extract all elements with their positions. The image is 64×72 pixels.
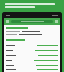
button[interactable] xyxy=(6,68,58,70)
button[interactable] xyxy=(6,43,58,48)
button[interactable] xyxy=(11,20,53,23)
button[interactable] xyxy=(6,53,58,58)
button[interactable]: Menu xyxy=(4,18,60,25)
button[interactable] xyxy=(6,48,58,53)
button[interactable] xyxy=(6,31,58,32)
button[interactable] xyxy=(6,34,58,35)
button[interactable] xyxy=(6,58,58,63)
button[interactable] xyxy=(6,63,58,68)
